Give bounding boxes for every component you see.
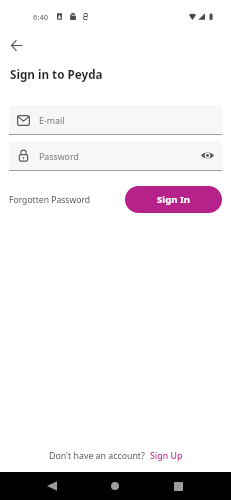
staticText: Don't have an account? [49,450,145,462]
button[interactable]: Back [38,472,66,500]
button[interactable]: Password [9,141,222,170]
button[interactable]: Forgotten Password [9,194,91,206]
staticText: E-mail [39,115,65,127]
button[interactable]: E-mail [9,105,222,134]
button[interactable]: Back [4,33,29,58]
button[interactable]: Show password [197,145,217,165]
button[interactable]: Recents [164,472,192,500]
staticText: 6:40 [33,12,49,22]
button[interactable]: Sign Up [150,450,183,462]
staticText: Sign in to Peyda [10,66,103,82]
staticText: Password [39,151,79,163]
button[interactable]: Home [101,472,129,500]
button[interactable]: Sign In [125,186,222,213]
staticText: Sign In [157,193,190,206]
